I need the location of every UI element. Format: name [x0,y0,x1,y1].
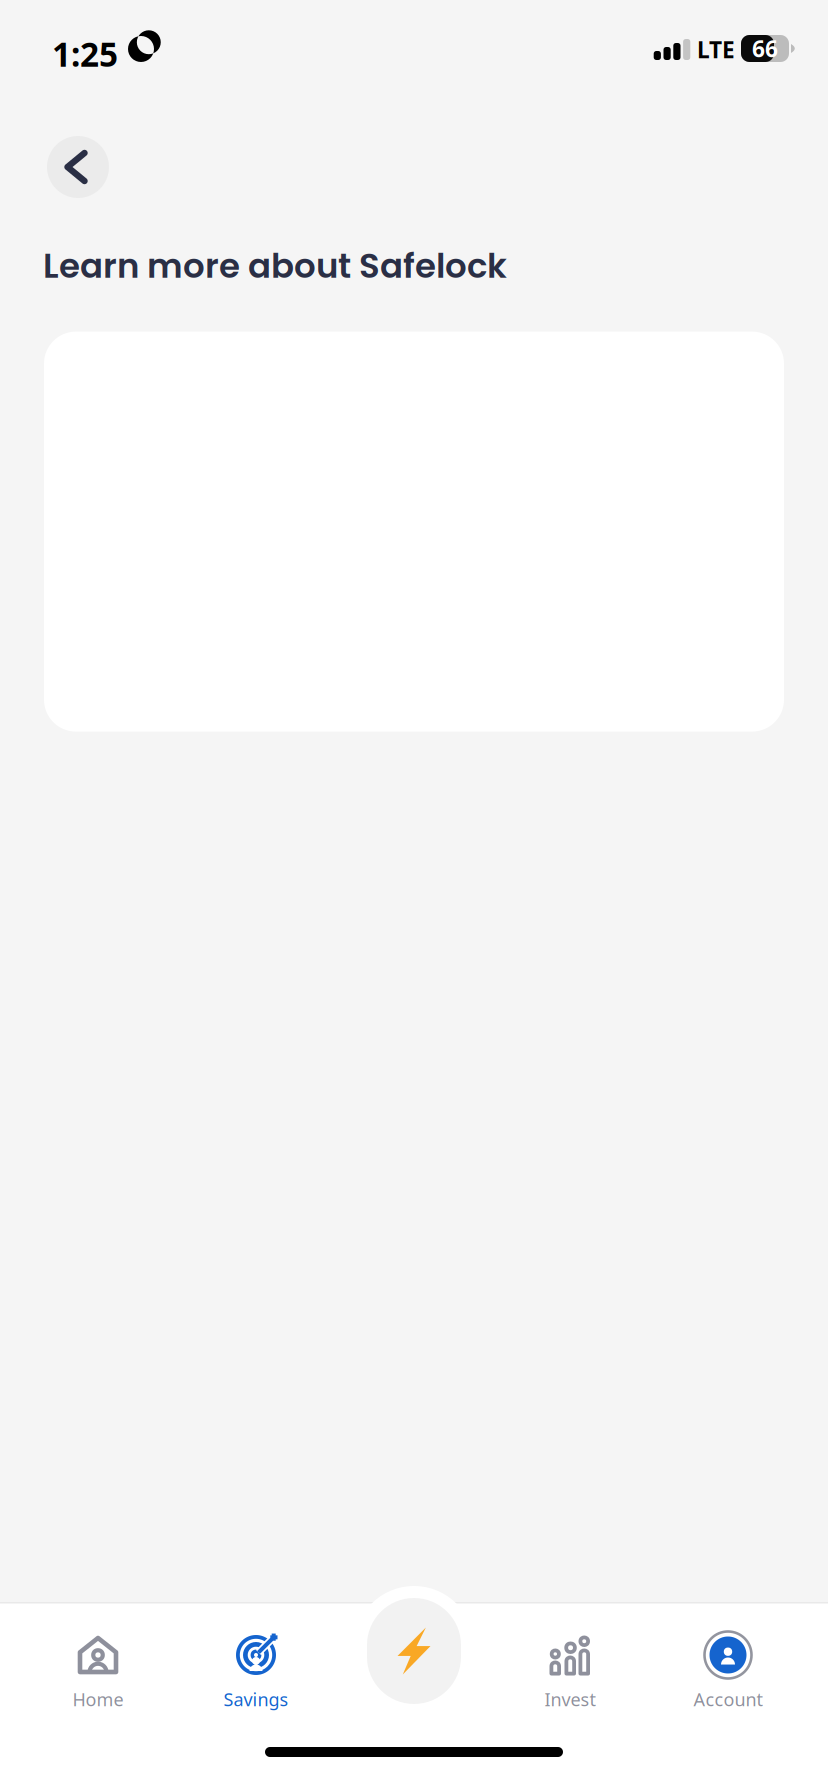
staticText: Invest [544,1687,595,1711]
staticText: Account [693,1687,762,1711]
staticText: LTE [697,34,735,65]
button[interactable]: Back [47,136,109,198]
staticText: 1:25 [52,31,118,76]
staticText: Home [72,1687,123,1711]
button[interactable]: Home [15,1632,181,1732]
button[interactable]: Quick action [354,1586,474,1716]
staticText: 66 [752,33,778,64]
button[interactable]: Account [645,1632,811,1732]
staticText: Savings [223,1687,288,1711]
button[interactable]: Invest [487,1632,653,1732]
staticText: Learn more about Safelock [43,242,507,290]
button[interactable]: Savings [173,1632,339,1732]
